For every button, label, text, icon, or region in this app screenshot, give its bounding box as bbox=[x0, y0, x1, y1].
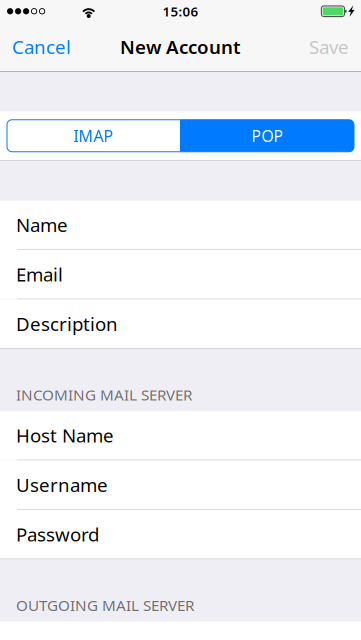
staticText: Name bbox=[16, 212, 68, 237]
button[interactable]: Email bbox=[0, 250, 361, 298]
staticText: 15:06 bbox=[162, 2, 198, 20]
staticText: Description bbox=[16, 311, 118, 336]
staticText: Password bbox=[16, 522, 99, 547]
staticText: Cancel bbox=[12, 34, 71, 59]
button[interactable]: Username bbox=[0, 460, 361, 509]
button[interactable]: POP bbox=[181, 120, 354, 152]
staticText: POP bbox=[251, 125, 283, 146]
button[interactable]: Description bbox=[0, 299, 361, 348]
staticText: IMAP bbox=[73, 125, 113, 146]
staticText: Email bbox=[16, 262, 63, 287]
button[interactable]: Save bbox=[299, 22, 361, 71]
staticText: INCOMING MAIL SERVER bbox=[16, 384, 192, 405]
button[interactable]: Cancel bbox=[0, 22, 81, 71]
button[interactable]: Name bbox=[0, 200, 361, 249]
staticText: Username bbox=[16, 472, 108, 497]
staticText: OUTGOING MAIL SERVER bbox=[16, 595, 194, 615]
button[interactable]: Password bbox=[0, 510, 361, 558]
button[interactable]: IMAP bbox=[7, 120, 180, 152]
staticText: New Account bbox=[120, 34, 241, 59]
button[interactable]: Host Name bbox=[0, 411, 361, 459]
staticText: Host Name bbox=[16, 423, 114, 448]
staticText: Save bbox=[309, 34, 349, 59]
